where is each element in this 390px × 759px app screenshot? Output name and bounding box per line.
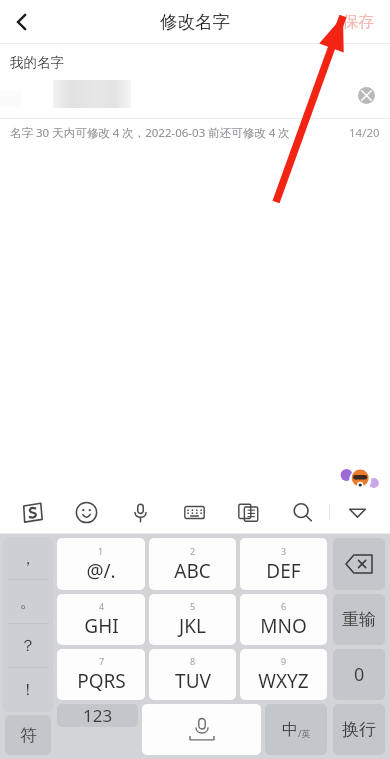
staticText: 中 — [282, 720, 298, 740]
button[interactable]: Clear text — [350, 79, 382, 111]
staticText: 14/20 — [349, 125, 380, 141]
staticText: 重输 — [342, 609, 376, 630]
staticText: GHI — [84, 613, 119, 639]
staticText: 4 — [99, 600, 105, 612]
button[interactable]: Assistant — [336, 469, 380, 489]
staticText: ， — [20, 549, 36, 569]
staticText: 我的名字 — [10, 54, 64, 71]
staticText: 修改名字 — [160, 11, 230, 33]
button[interactable]: 8 — [149, 649, 236, 700]
button[interactable]: Keyboard layout — [167, 490, 221, 534]
button[interactable]: 中 — [265, 704, 327, 755]
staticText: 7 — [99, 655, 105, 667]
button[interactable]: ？ — [3, 624, 53, 668]
staticText: ！ — [20, 680, 36, 700]
staticText: 0 — [354, 662, 365, 687]
staticText: 123 — [83, 704, 113, 727]
staticText: 2 — [190, 545, 196, 557]
staticText: 。 — [20, 592, 36, 612]
staticText: 6 — [281, 600, 287, 612]
button[interactable]: Space — [142, 704, 261, 755]
staticText: @/. — [86, 558, 116, 584]
button[interactable]: Hide keyboard — [330, 490, 384, 534]
button[interactable]: 7 — [57, 649, 145, 700]
button[interactable]: 4 — [57, 594, 145, 645]
button[interactable]: 9 — [240, 649, 327, 700]
button[interactable]: Clipboard — [221, 490, 275, 534]
staticText: 9 — [281, 655, 287, 667]
button[interactable]: 1 — [57, 538, 145, 590]
staticText: 保存 — [342, 12, 374, 32]
staticText: MNO — [260, 613, 307, 639]
button[interactable]: Clear text — [0, 71, 390, 119]
staticText: 名字 30 天内可修改 4 次，2022-06-03 前还可修改 4 次 — [10, 125, 290, 141]
button[interactable]: Backspace — [333, 538, 385, 590]
button[interactable]: Emoji — [59, 490, 113, 534]
staticText: 8 — [190, 655, 196, 667]
staticText: 换行 — [342, 719, 376, 740]
button[interactable]: Sogou input — [6, 490, 59, 534]
button[interactable]: ， — [3, 537, 53, 580]
staticText: 5 — [190, 600, 196, 612]
button[interactable]: 3 — [240, 538, 327, 590]
staticText: 3 — [281, 545, 287, 557]
staticText: TUV — [175, 668, 211, 694]
button[interactable]: 换行 — [333, 704, 385, 755]
staticText: PQRS — [77, 668, 126, 694]
button[interactable]: Search — [275, 490, 329, 534]
button[interactable]: 2 — [149, 538, 236, 590]
staticText: ABC — [174, 558, 211, 584]
button[interactable]: 重输 — [333, 594, 385, 645]
staticText: /英 — [298, 727, 311, 739]
staticText: WXYZ — [258, 668, 309, 694]
staticText: JKL — [179, 613, 206, 639]
button[interactable]: 6 — [240, 594, 327, 645]
button[interactable]: Voice input — [113, 490, 167, 534]
button[interactable]: 0 — [333, 649, 385, 700]
button[interactable]: 5 — [149, 594, 236, 645]
button[interactable]: 123 — [57, 704, 138, 727]
button[interactable]: 。 — [3, 580, 53, 624]
staticText: 1 — [98, 545, 104, 557]
button[interactable]: Back — [0, 0, 44, 44]
button[interactable]: 保存 — [336, 6, 380, 38]
button[interactable]: 符 — [5, 715, 51, 755]
staticText: 符 — [20, 725, 37, 746]
button[interactable]: ！ — [3, 668, 53, 712]
staticText: ？ — [20, 636, 36, 656]
staticText: DEF — [266, 558, 301, 584]
